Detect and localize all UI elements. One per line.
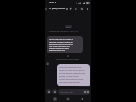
staticText: Votre code OTP est arrive a l'instant. V…: [49, 38, 75, 51]
staticText: 10:42: [49, 1, 54, 4]
staticText: Secured with Google Tables: [56, 58, 80, 60]
button[interactable]: Back: [44, 7, 48, 11]
button[interactable]: Verified business: [65, 7, 69, 11]
button[interactable]: Camera: [52, 89, 57, 94]
button[interactable]: Recent apps: [51, 96, 59, 102]
button[interactable]: Today: [65, 25, 72, 28]
button[interactable]: Votre code OTP est arrive a l'instant. V…: [47, 36, 83, 53]
staticText: J'ai vue de tableau et tu te parler ne l…: [59, 66, 86, 84]
button[interactable]: Call: [69, 7, 73, 11]
staticText: Delivered · now: [79, 85, 91, 87]
button[interactable]: Search: [80, 7, 84, 11]
button[interactable]: Home: [64, 96, 72, 102]
button[interactable]: Back: [78, 96, 86, 102]
button[interactable]: More options: [86, 7, 89, 10]
staticText: Today: [66, 26, 71, 28]
staticText: +1 (555) 019-232: [49, 7, 66, 10]
button[interactable]: Video call: [74, 7, 78, 11]
button[interactable]: Add attachment: [46, 89, 51, 94]
button[interactable]: J'ai vue de tableau et tu te parler ne l…: [57, 64, 90, 86]
staticText: Message on 08/04/25 at 10:47 AM: [49, 30, 78, 32]
staticText: Message • SMS: [60, 91, 74, 94]
button[interactable]: Message • SMS: [58, 89, 90, 95]
